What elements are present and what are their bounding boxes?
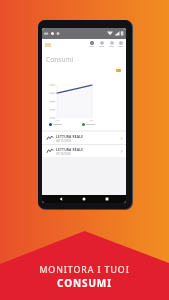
button[interactable]: Consumi: [86, 40, 96, 50]
button[interactable]: Periodo: [116, 69, 121, 72]
button[interactable]: Back: [57, 195, 65, 203]
button[interactable]: LETTURA REALE: [42, 132, 126, 144]
button[interactable]: Recents: [103, 195, 111, 203]
button[interactable]: Bollette: [96, 40, 106, 50]
staticText: 04/11/2020: [56, 139, 71, 143]
staticText: LETTURA REALE: [56, 147, 84, 151]
button[interactable]: Home: [80, 195, 88, 203]
button[interactable]: LETTURA REALE: [42, 145, 126, 157]
staticText: LETTURA REALE: [56, 134, 84, 138]
staticText: CONSUMI: [57, 276, 112, 290]
staticText: MONITORA I TUOI: [39, 264, 130, 276]
button[interactable]: Logo: [45, 43, 51, 47]
button[interactable]: Contratti: [106, 40, 116, 50]
staticText: 07/10/2020: [56, 152, 71, 156]
button[interactable]: Profilo: [115, 40, 125, 50]
staticText: Consumi: [46, 55, 74, 64]
